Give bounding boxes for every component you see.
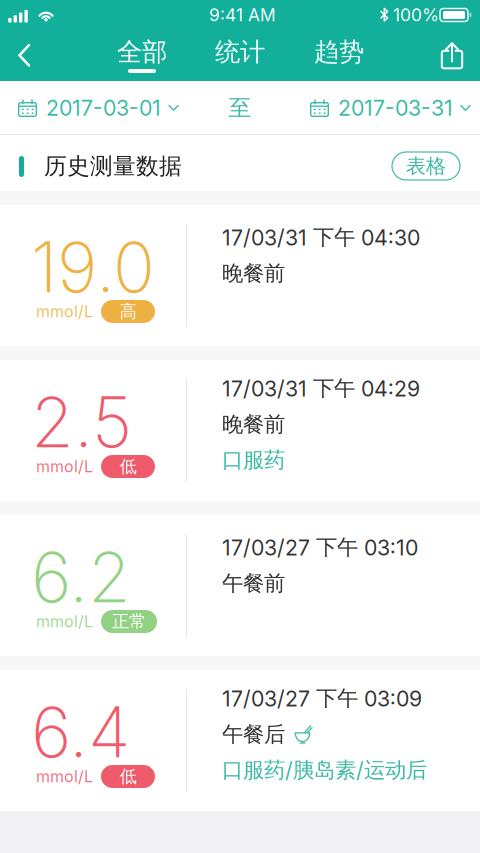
staticText: 全部: [117, 36, 167, 68]
button[interactable]: 趋势: [311, 30, 367, 81]
staticText: mmol/L: [36, 457, 93, 476]
staticText: 表格: [406, 153, 446, 179]
staticText: 2017-03-01: [46, 95, 161, 121]
staticText: 17/03/31 下午 04:29: [222, 375, 420, 402]
staticText: 6.2: [31, 535, 131, 619]
button[interactable]: 6.2: [0, 515, 480, 656]
staticText: 历史测量数据: [44, 152, 182, 181]
staticText: 19.0: [31, 225, 155, 309]
staticText: 17/03/27 下午 03:10: [222, 534, 418, 561]
staticText: 统计: [215, 36, 265, 68]
staticText: 6.4: [31, 690, 130, 774]
staticText: 晚餐前: [222, 260, 285, 287]
staticText: 晚餐前: [222, 411, 285, 438]
button[interactable]: 2017-03-31: [270, 81, 480, 135]
button[interactable]: 返回: [0, 30, 48, 81]
staticText: 17/03/27 下午 03:09: [222, 685, 422, 712]
button[interactable]: 19.0: [0, 205, 480, 346]
staticText: 2.5: [31, 380, 132, 464]
staticText: 低: [119, 456, 136, 477]
staticText: mmol/L: [36, 612, 93, 631]
staticText: 午餐前: [222, 570, 285, 597]
staticText: 至: [228, 94, 251, 122]
staticText: mmol/L: [36, 302, 93, 321]
staticText: 趋势: [314, 36, 364, 68]
button[interactable]: 统计: [212, 30, 268, 81]
button[interactable]: 2.5: [0, 360, 480, 501]
staticText: 口服药/胰岛素/运动后: [222, 757, 427, 784]
staticText: 2017-03-31: [338, 95, 453, 121]
button[interactable]: 全部: [114, 30, 170, 81]
staticText: 正常: [112, 611, 146, 632]
staticText: 口服药: [222, 447, 285, 474]
staticText: 高: [119, 301, 136, 322]
staticText: 17/03/31 下午 04:30: [222, 224, 420, 251]
staticText: 午餐后: [222, 721, 285, 748]
staticText: 100%: [393, 4, 439, 25]
button[interactable]: 分享: [429, 30, 475, 81]
staticText: 低: [119, 766, 136, 787]
button[interactable]: 表格: [392, 152, 460, 180]
button[interactable]: 6.4: [0, 670, 480, 811]
staticText: 9:41 AM: [209, 4, 276, 25]
button[interactable]: 2017-03-01: [0, 81, 210, 135]
staticText: mmol/L: [36, 767, 93, 786]
